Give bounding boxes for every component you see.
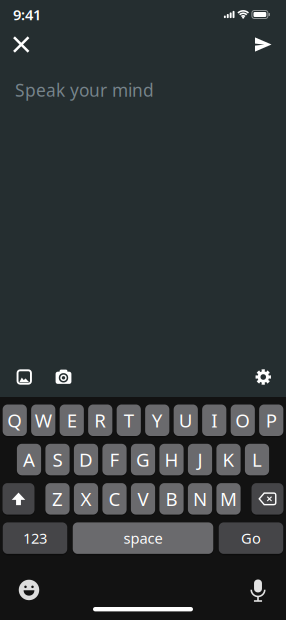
staticText: C xyxy=(108,486,120,511)
staticText: K xyxy=(222,447,234,472)
button[interactable]: Z xyxy=(45,483,70,515)
staticText: X xyxy=(80,486,91,511)
button[interactable]: F xyxy=(102,444,127,475)
staticText: P xyxy=(266,408,277,433)
button[interactable]: D xyxy=(74,444,98,475)
staticText: H xyxy=(164,447,178,472)
button[interactable]: N xyxy=(188,483,212,515)
button[interactable]: P xyxy=(259,404,283,436)
button[interactable]: B xyxy=(159,483,184,515)
button[interactable]: U xyxy=(174,404,198,436)
button[interactable] xyxy=(0,370,31,384)
staticText: J xyxy=(197,447,202,472)
staticText: 123 xyxy=(23,528,47,548)
button[interactable]: Go xyxy=(219,522,283,554)
button[interactable]: W xyxy=(31,404,55,436)
staticText: Q xyxy=(7,408,22,433)
button[interactable]: X xyxy=(74,483,98,515)
button[interactable]: V xyxy=(131,483,155,515)
staticText: L xyxy=(252,447,262,472)
button[interactable] xyxy=(2,483,34,515)
button[interactable] xyxy=(14,575,44,605)
staticText: U xyxy=(179,408,193,433)
staticText: 9:41 xyxy=(13,5,41,24)
button[interactable] xyxy=(31,369,71,385)
staticText: M xyxy=(220,486,237,511)
staticText: Go xyxy=(241,528,261,548)
staticText: I xyxy=(211,408,217,433)
staticText: T xyxy=(124,408,134,433)
staticText: R xyxy=(94,408,106,433)
staticText: D xyxy=(79,447,93,472)
button[interactable]: L xyxy=(245,444,269,475)
staticText: W xyxy=(35,408,52,433)
staticText: Z xyxy=(52,486,63,511)
staticText: N xyxy=(193,486,207,511)
button[interactable]: space xyxy=(73,522,213,554)
button[interactable] xyxy=(247,29,279,60)
button[interactable]: R xyxy=(88,404,112,436)
staticText: V xyxy=(137,486,148,511)
button[interactable]: M xyxy=(216,483,241,515)
button[interactable]: J xyxy=(188,444,212,475)
button[interactable]: E xyxy=(60,404,84,436)
button[interactable] xyxy=(251,483,283,515)
button[interactable]: Y xyxy=(145,404,169,436)
staticText: space xyxy=(123,528,162,548)
button[interactable]: A xyxy=(17,444,41,475)
button[interactable] xyxy=(6,29,36,60)
staticText: F xyxy=(109,447,119,472)
staticText: Speak your mind xyxy=(15,78,154,101)
staticText: A xyxy=(23,447,35,472)
button[interactable]: G xyxy=(131,444,155,475)
button[interactable] xyxy=(243,575,273,605)
button[interactable]: O xyxy=(231,404,255,436)
button[interactable]: C xyxy=(102,483,127,515)
staticText: B xyxy=(165,486,177,511)
staticText: G xyxy=(136,447,150,472)
staticText: O xyxy=(235,408,250,433)
button[interactable]: I xyxy=(202,404,226,436)
button[interactable]: 123 xyxy=(3,522,67,554)
button[interactable]: K xyxy=(216,444,241,475)
button[interactable]: S xyxy=(45,444,70,475)
button[interactable] xyxy=(255,369,286,385)
staticText: Y xyxy=(152,408,163,433)
button[interactable]: H xyxy=(159,444,184,475)
button[interactable]: T xyxy=(117,404,141,436)
staticText: S xyxy=(52,447,62,472)
button[interactable]: Q xyxy=(3,404,27,436)
staticText: E xyxy=(67,408,77,433)
